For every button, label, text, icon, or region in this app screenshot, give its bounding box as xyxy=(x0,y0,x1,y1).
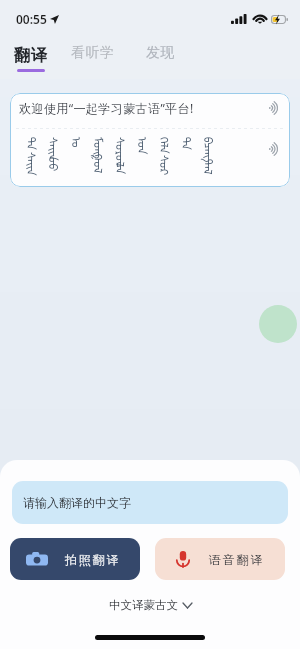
button[interactable]: Play audio xyxy=(265,141,281,157)
staticText: 欢迎使用“一起学习蒙古语”平台! xyxy=(19,100,194,117)
button[interactable]: 拍照翻译 xyxy=(10,538,140,580)
staticText: 拍照翻译 xyxy=(65,552,121,567)
staticText: 语音翻译 xyxy=(209,552,265,567)
staticText: 中文译蒙古文 xyxy=(109,598,178,612)
button[interactable]: 语音翻译 xyxy=(155,538,285,580)
staticText: 请输入翻译的中文字 xyxy=(23,495,131,510)
button[interactable]: 看听学 xyxy=(71,50,115,68)
button[interactable]: 发现 xyxy=(146,50,175,68)
button[interactable]: 中文译蒙古文 xyxy=(0,598,300,612)
staticText: 翻译 xyxy=(14,45,47,66)
button[interactable]: Play audio xyxy=(265,100,281,116)
staticText: 看听学 xyxy=(71,44,115,62)
staticText: 发现 xyxy=(146,44,175,62)
button[interactable]: 翻译 xyxy=(12,45,49,72)
staticText: 00:55 xyxy=(16,11,47,27)
button[interactable]: 请输入翻译的中文字 xyxy=(12,481,288,524)
